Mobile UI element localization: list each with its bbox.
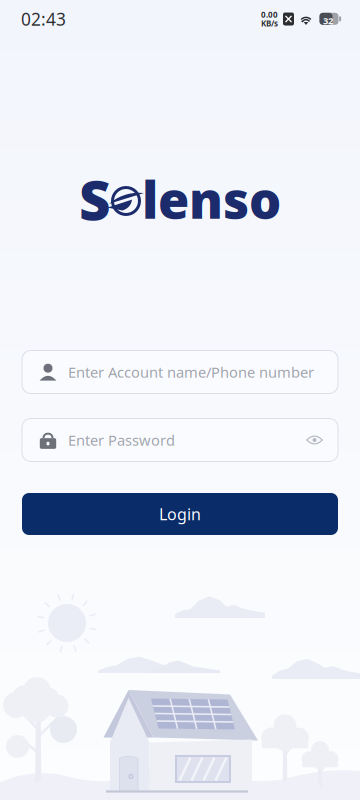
staticText: 0.00: [261, 9, 278, 20]
staticText: KB/s: [261, 18, 278, 29]
button[interactable]: Enter Password: [22, 418, 338, 461]
staticText: S: [79, 163, 111, 235]
staticText: Enter Password: [68, 430, 175, 450]
button[interactable]: Login: [22, 493, 338, 535]
staticText: Enter Account name/Phone number: [68, 362, 314, 382]
staticText: lenso: [142, 165, 281, 233]
staticText: Login: [159, 503, 201, 525]
button[interactable]: Enter Account name/Phone number: [22, 350, 338, 393]
staticText: 02:43: [21, 7, 66, 30]
staticText: 32: [323, 14, 333, 27]
